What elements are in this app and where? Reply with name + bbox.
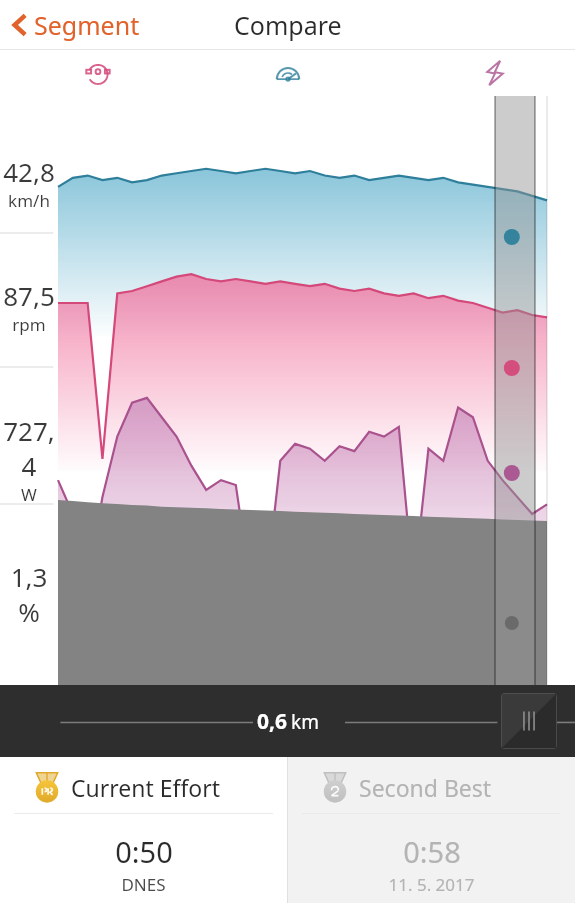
staticText: 11. 5. 2017	[388, 873, 475, 896]
staticText: Segment	[34, 8, 140, 42]
button[interactable]: Second Best	[288, 757, 575, 903]
staticText: 0:50	[115, 832, 173, 871]
staticText: 1,3%	[0, 559, 58, 629]
button[interactable]: Current Effort	[0, 757, 287, 903]
staticText: km/h	[8, 189, 50, 212]
staticText: 0:58	[403, 832, 461, 871]
button[interactable]: Power	[475, 53, 515, 93]
staticText: rpm	[12, 313, 46, 336]
staticText: 0,6	[257, 707, 288, 736]
staticText: 87,5	[3, 278, 55, 313]
staticText: DNES	[121, 873, 166, 896]
staticText: 727,4	[0, 413, 58, 483]
staticText: Compare	[234, 8, 342, 42]
button[interactable]: Cadence	[78, 53, 118, 93]
staticText: Second Best	[359, 772, 492, 803]
button[interactable]: Speed	[268, 53, 308, 93]
button[interactable]: Segment	[0, 4, 150, 46]
staticText: Current Effort	[71, 772, 221, 803]
staticText: km	[291, 709, 319, 735]
staticText: W	[21, 483, 37, 504]
button[interactable]: Zoom	[501, 693, 557, 749]
staticText: 42,8	[3, 154, 55, 189]
